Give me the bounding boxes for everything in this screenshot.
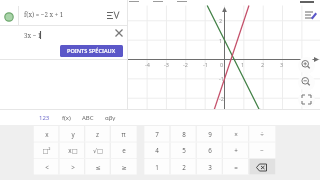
- button[interactable]: y: [60, 126, 85, 142]
- staticText: 3: [280, 61, 284, 68]
- button[interactable]: ≥: [111, 159, 136, 175]
- staticText: 7: [155, 130, 159, 139]
- button[interactable]: 2: [171, 159, 196, 175]
- staticText: 3x − 1: [24, 31, 42, 39]
- button[interactable]: x□: [60, 142, 85, 158]
- staticText: 1: [241, 61, 245, 68]
- staticText: 4: [155, 146, 159, 155]
- button[interactable]: <: [34, 159, 59, 175]
- button[interactable]: z: [85, 126, 110, 142]
- staticText: POINTS SPÉCIAUX: [67, 47, 116, 55]
- staticText: 2: [261, 61, 265, 68]
- staticText: ≥: [121, 164, 127, 171]
- staticText: □²: [42, 146, 51, 155]
- button[interactable]: x: [34, 126, 59, 142]
- staticText: 9: [208, 130, 212, 139]
- staticText: +: [234, 146, 238, 155]
- staticText: 123: [39, 114, 50, 122]
- staticText: 4: [299, 61, 303, 68]
- button[interactable]: 123: [33, 111, 55, 124]
- staticText: ABC: [82, 114, 94, 122]
- staticText: 1: [155, 163, 159, 172]
- staticText: 2: [182, 163, 186, 172]
- staticText: 8: [182, 130, 186, 139]
- button[interactable]: Close keyboard: [305, 109, 318, 122]
- staticText: x: [45, 130, 49, 139]
- button[interactable]: Graphics settings: [303, 9, 317, 23]
- button[interactable]: 4: [144, 142, 169, 158]
- staticText: 2: [219, 17, 223, 24]
- button[interactable]: π: [111, 126, 136, 142]
- staticText: √□: [93, 147, 103, 154]
- button[interactable]: Backspace: [249, 159, 274, 175]
- button[interactable]: Zoom out: [298, 74, 315, 91]
- staticText: αβγ: [105, 114, 116, 122]
- staticText: z: [96, 130, 99, 139]
- button[interactable]: =: [223, 159, 248, 175]
- button[interactable]: >: [60, 159, 85, 175]
- button[interactable]: 8: [171, 126, 196, 142]
- button[interactable]: 3: [197, 159, 222, 175]
- button[interactable]: ABC: [77, 111, 99, 124]
- button[interactable]: □²: [34, 142, 59, 158]
- button[interactable]: Fit to screen: [298, 91, 315, 108]
- staticText: 3: [208, 163, 212, 172]
- button[interactable]: 1: [144, 159, 169, 175]
- staticText: ×: [234, 130, 238, 139]
- staticText: -1: [219, 75, 224, 82]
- staticText: >: [71, 163, 75, 172]
- button[interactable]: e: [111, 142, 136, 158]
- staticText: <: [45, 163, 49, 172]
- staticText: -4: [145, 61, 150, 68]
- button[interactable]: Table of values: [106, 10, 120, 24]
- button[interactable]: αβγ: [99, 111, 121, 124]
- staticText: −: [260, 146, 264, 155]
- button[interactable]: POINTS SPÉCIAUX: [60, 45, 123, 57]
- staticText: ÷: [260, 130, 264, 139]
- button[interactable]: 5: [171, 142, 196, 158]
- button[interactable]: ÷: [249, 126, 274, 142]
- button[interactable]: ≤: [85, 159, 110, 175]
- staticText: ≤: [95, 164, 101, 171]
- button[interactable]: 9: [197, 126, 222, 142]
- staticText: 5: [182, 146, 186, 155]
- staticText: f(x): [62, 114, 71, 122]
- button[interactable]: +: [223, 142, 248, 158]
- staticText: f(x) = −2 x + 1: [24, 10, 64, 18]
- button[interactable]: f(x) = −2 x + 1: [0, 0, 128, 26]
- button[interactable]: f(x): [55, 111, 77, 124]
- staticText: -2: [183, 61, 188, 68]
- button[interactable]: 7: [144, 126, 169, 142]
- staticText: =: [234, 163, 238, 172]
- staticText: x□: [68, 146, 78, 155]
- staticText: 1: [219, 37, 223, 44]
- button[interactable]: Zoom in: [298, 57, 315, 74]
- staticText: -1: [203, 61, 208, 68]
- button[interactable]: −: [249, 142, 274, 158]
- staticText: e: [122, 146, 126, 155]
- staticText: -3: [164, 61, 169, 68]
- button[interactable]: Clear input: [113, 27, 125, 39]
- staticText: 6: [208, 146, 212, 155]
- button[interactable]: ×: [223, 126, 248, 142]
- staticText: 0: [220, 61, 224, 68]
- button[interactable]: 6: [197, 142, 222, 158]
- button[interactable]: √□: [85, 142, 110, 158]
- staticText: π: [121, 130, 126, 139]
- staticText: -2: [219, 95, 224, 102]
- staticText: y: [71, 130, 75, 139]
